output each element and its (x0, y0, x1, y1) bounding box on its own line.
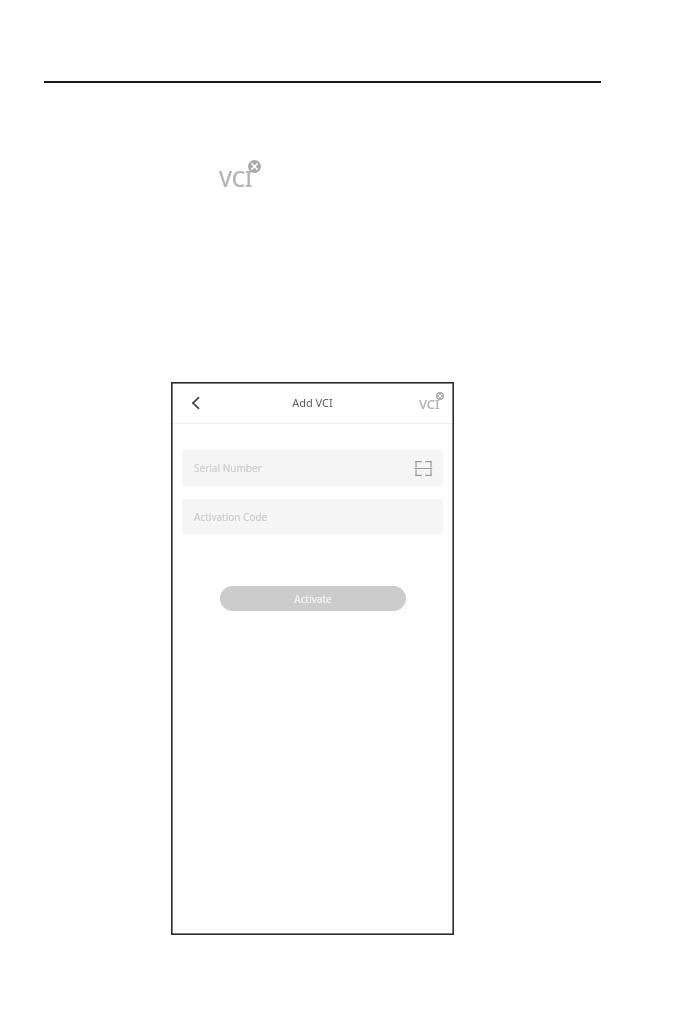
staticText: Serial Number (194, 461, 262, 475)
staticText: VCI (219, 165, 253, 194)
button[interactable]: VCI logo (419, 392, 444, 413)
staticText: Activate (294, 592, 332, 606)
staticText: Activation Code (194, 510, 268, 524)
staticText: Add VCI (292, 395, 333, 410)
button[interactable]: Scan serial number (412, 457, 434, 479)
button[interactable]: Serial Number (182, 450, 443, 486)
button[interactable]: Activate (220, 586, 406, 611)
staticText: VCI (419, 395, 440, 413)
button[interactable]: Activation Code (182, 499, 443, 534)
button[interactable]: Back (181, 388, 211, 418)
